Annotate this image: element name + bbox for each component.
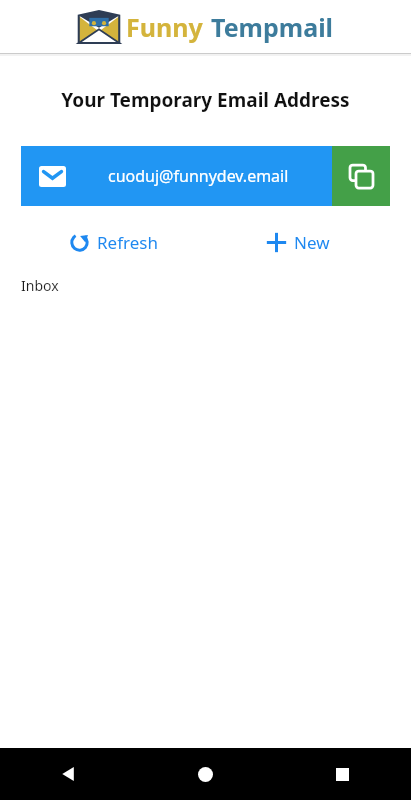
button[interactable]: Recent apps — [274, 748, 411, 800]
staticText: New — [294, 231, 330, 254]
button[interactable]: New — [205, 225, 390, 259]
staticText: Funny — [126, 10, 203, 44]
staticText: Your Temporary Email Address — [0, 87, 411, 113]
button[interactable]: Refresh — [21, 225, 205, 259]
button[interactable]: Back — [0, 748, 137, 800]
button[interactable]: Home — [137, 748, 274, 800]
staticText: Refresh — [97, 231, 158, 254]
button[interactable]: cuoduj@funnydev.email — [21, 146, 332, 206]
staticText: Tempmail — [211, 10, 334, 44]
staticText: cuoduj@funnydev.email — [108, 165, 289, 187]
staticText: Inbox — [21, 276, 59, 295]
button[interactable]: Copy email address — [332, 146, 390, 206]
